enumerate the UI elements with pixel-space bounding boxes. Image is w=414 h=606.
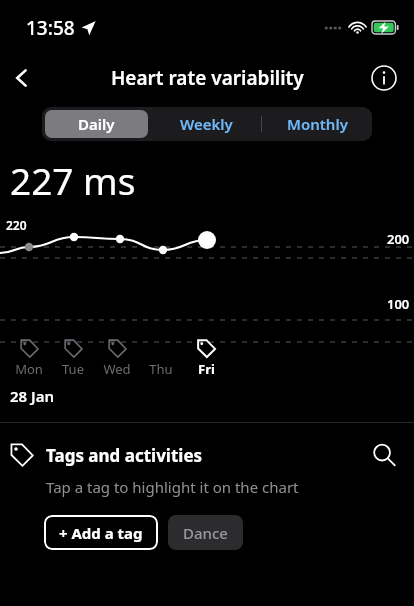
staticText: Monthly xyxy=(287,114,348,134)
button[interactable]: Fri xyxy=(184,339,228,378)
staticText: Fri xyxy=(198,360,215,378)
staticText: 200 xyxy=(387,230,410,248)
button[interactable]: Wed xyxy=(95,339,139,378)
staticText: 100 xyxy=(387,295,410,313)
button[interactable]: Dance xyxy=(168,515,243,550)
button[interactable]: Mon xyxy=(7,339,51,378)
button[interactable]: Tue xyxy=(51,339,95,378)
button[interactable]: + Add a tag xyxy=(44,515,158,550)
staticText: Tap a tag to highlight it on the chart xyxy=(46,477,299,497)
staticText: Wed xyxy=(103,360,131,378)
staticText: Tags and activities xyxy=(46,444,364,467)
button[interactable]: Weekly xyxy=(151,107,261,141)
staticText: Mon xyxy=(15,360,43,378)
button[interactable]: Tags and activities xyxy=(0,435,414,475)
staticText: + Add a tag xyxy=(59,523,143,543)
staticText: 220 xyxy=(6,217,27,233)
button[interactable]: Monthly xyxy=(262,107,372,141)
button[interactable]: Search xyxy=(364,435,404,475)
staticText: Thu xyxy=(149,360,173,378)
staticText: Dance xyxy=(183,523,228,543)
staticText: 227 ms xyxy=(10,155,136,205)
button[interactable]: Back xyxy=(0,56,44,100)
staticText: Heart rate variability xyxy=(111,65,304,91)
button[interactable]: Thu xyxy=(139,339,183,378)
staticText: Daily xyxy=(78,114,115,134)
staticText: 13:58 xyxy=(26,15,75,41)
button[interactable]: Information xyxy=(362,56,406,100)
staticText: 28 Jan xyxy=(10,386,55,406)
staticText: Tue xyxy=(62,360,84,378)
staticText: Weekly xyxy=(180,114,233,134)
button[interactable]: Daily xyxy=(45,110,148,138)
